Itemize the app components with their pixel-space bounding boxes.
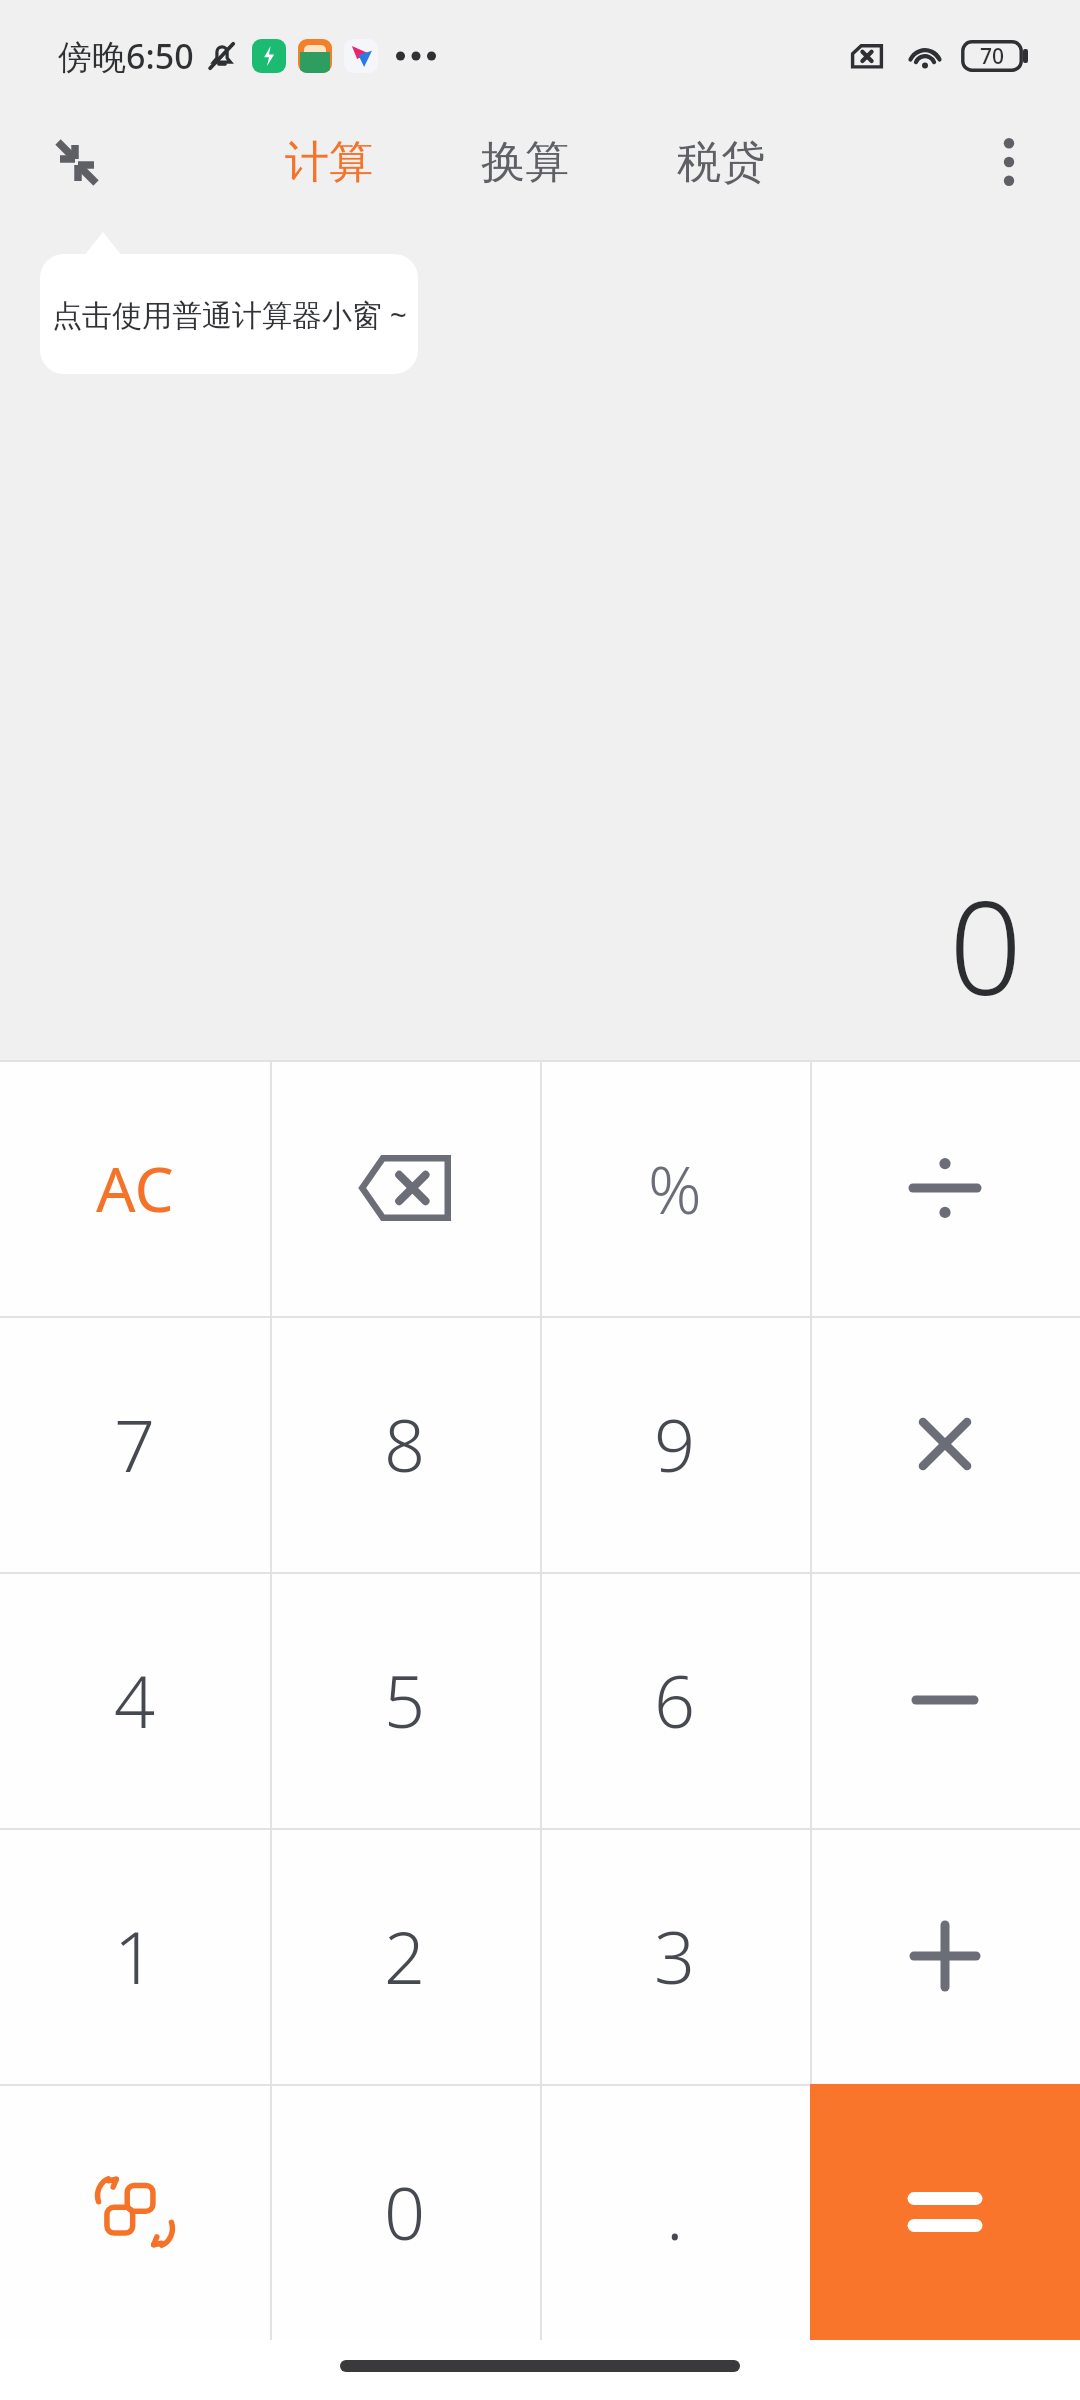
staticText: 3: [654, 1907, 696, 2005]
staticText: 计算: [285, 135, 373, 190]
button[interactable]: [810, 1828, 1080, 2084]
button[interactable]: 4: [0, 1572, 270, 1828]
staticText: 70: [980, 42, 1005, 71]
button[interactable]: 6: [540, 1572, 810, 1828]
button[interactable]: 5: [270, 1572, 540, 1828]
staticText: 点击使用普通计算器小窗 ~: [52, 294, 407, 335]
button[interactable]: 主屏幕手势条: [340, 2360, 740, 2372]
staticText: 傍晚6:50: [58, 33, 194, 79]
button[interactable]: 3: [540, 1828, 810, 2084]
button[interactable]: AC: [0, 1060, 270, 1316]
button[interactable]: [810, 1572, 1080, 1828]
button[interactable]: 更多选项: [966, 119, 1052, 205]
button[interactable]: %: [540, 1060, 810, 1316]
staticText: AC: [96, 1146, 174, 1230]
staticText: 1: [114, 1907, 156, 2005]
staticText: 2: [384, 1907, 426, 2005]
staticText: 0: [948, 858, 1022, 1032]
staticText: 6: [654, 1651, 696, 1749]
staticText: 9: [654, 1395, 696, 1493]
staticText: 4: [114, 1651, 156, 1749]
staticText: 换算: [481, 135, 569, 190]
button[interactable]: 小窗模式: [32, 119, 118, 205]
button[interactable]: 点击使用普通计算器小窗 ~: [40, 254, 418, 374]
staticText: 8: [384, 1395, 426, 1493]
staticText: 7: [114, 1395, 156, 1493]
button[interactable]: [810, 1316, 1080, 1572]
button[interactable]: 退格: [270, 1060, 540, 1316]
staticText: 5: [384, 1651, 426, 1749]
button[interactable]: .: [540, 2084, 810, 2340]
staticText: 税贷: [677, 135, 765, 190]
button[interactable]: 税贷: [671, 127, 771, 198]
button[interactable]: 计算: [279, 127, 379, 198]
staticText: 0: [384, 2163, 426, 2261]
button[interactable]: 单位换算: [0, 2084, 270, 2340]
button[interactable]: 2: [270, 1828, 540, 2084]
button[interactable]: 1: [0, 1828, 270, 2084]
button[interactable]: 换算: [475, 127, 575, 198]
button[interactable]: [810, 2084, 1080, 2340]
button[interactable]: 7: [0, 1316, 270, 1572]
staticText: %: [648, 1143, 702, 1233]
staticText: .: [666, 2163, 684, 2261]
button[interactable]: [810, 1060, 1080, 1316]
button[interactable]: 9: [540, 1316, 810, 1572]
button[interactable]: 8: [270, 1316, 540, 1572]
button[interactable]: 0: [270, 2084, 540, 2340]
